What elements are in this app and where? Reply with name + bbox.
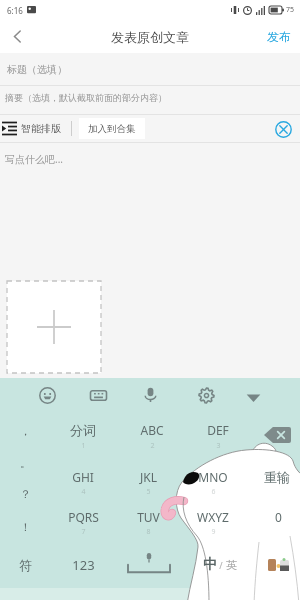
- button[interactable]: WXYZ: [185, 503, 241, 531]
- staticText: ！: [20, 520, 31, 534]
- button[interactable]: 加入到合集: [79, 118, 145, 139]
- staticText: JKL: [140, 469, 157, 485]
- button[interactable]: Space: [126, 552, 172, 574]
- staticText: 6:16: [7, 5, 23, 16]
- button[interactable]: DEF: [190, 416, 246, 444]
- staticText: 123: [72, 556, 95, 574]
- staticText: WXYZ: [197, 509, 229, 525]
- button[interactable]: 智能排版: [2, 115, 61, 142]
- staticText: 4: [81, 487, 86, 497]
- staticText: /: [217, 559, 226, 571]
- button[interactable]: ！: [0, 513, 53, 541]
- button[interactable]: 标题（选填）: [7, 53, 300, 85]
- staticText: 标题（选填）: [7, 63, 67, 76]
- button[interactable]: Stickers: [267, 557, 289, 573]
- button[interactable]: ，: [0, 417, 53, 445]
- staticText: 中: [203, 556, 217, 574]
- button[interactable]: Voice input: [138, 382, 162, 406]
- button[interactable]: 写点什么吧...: [5, 152, 300, 175]
- staticText: TUV: [137, 509, 160, 525]
- staticText: ，: [20, 424, 31, 438]
- staticText: DEF: [207, 422, 229, 438]
- button[interactable]: GHI: [55, 463, 111, 491]
- staticText: 智能排版: [21, 122, 61, 135]
- button[interactable]: 分词: [55, 416, 111, 444]
- staticText: 3: [216, 441, 221, 451]
- staticText: 75: [286, 5, 295, 15]
- button[interactable]: Settings: [194, 383, 218, 407]
- button[interactable]: Add image: [7, 281, 101, 373]
- button[interactable]: Back: [0, 20, 34, 53]
- staticText: 5: [146, 487, 151, 497]
- button[interactable]: 。: [0, 449, 53, 477]
- button[interactable]: Backspace: [264, 427, 291, 443]
- staticText: 英: [226, 558, 237, 572]
- staticText: ？: [20, 487, 31, 501]
- staticText: 8: [146, 527, 151, 537]
- button[interactable]: 重输: [249, 463, 300, 491]
- button[interactable]: Emoji: [35, 383, 59, 407]
- button[interactable]: TUV: [120, 503, 176, 531]
- button[interactable]: JKL: [120, 463, 176, 491]
- staticText: 6: [211, 487, 216, 497]
- button[interactable]: Close: [273, 119, 293, 139]
- button[interactable]: ABC: [124, 416, 180, 444]
- button[interactable]: 0: [250, 503, 300, 531]
- staticText: 发表原创文章: [111, 29, 189, 45]
- staticText: ABC: [140, 422, 164, 438]
- button[interactable]: 发布: [267, 20, 291, 53]
- staticText: 2: [150, 441, 155, 451]
- staticText: 发布: [267, 29, 291, 44]
- staticText: 。: [20, 456, 31, 470]
- button[interactable]: PQRS: [55, 503, 111, 531]
- button[interactable]: Chinese / English: [203, 554, 237, 576]
- staticText: 摘要（选填，默认截取前面的部分内容）: [5, 92, 167, 103]
- staticText: 9: [211, 527, 216, 537]
- staticText: 1: [81, 441, 86, 451]
- staticText: 分词: [70, 422, 96, 438]
- staticText: 重输: [264, 469, 290, 485]
- staticText: 0: [275, 509, 282, 525]
- staticText: 7: [81, 527, 86, 537]
- staticText: 加入到合集: [88, 123, 136, 135]
- button[interactable]: 123: [55, 551, 111, 579]
- button[interactable]: 符: [0, 551, 53, 579]
- staticText: 写点什么吧...: [5, 152, 64, 166]
- button[interactable]: 摘要（选填，默认截取前面的部分内容）: [5, 86, 300, 108]
- staticText: MNO: [198, 469, 228, 485]
- button[interactable]: MNO: [185, 463, 241, 491]
- staticText: GHI: [72, 469, 94, 485]
- staticText: PQRS: [68, 509, 99, 525]
- button[interactable]: Hide keyboard: [241, 385, 265, 409]
- button[interactable]: ？: [0, 480, 53, 508]
- button[interactable]: Keyboard layout: [86, 383, 110, 407]
- staticText: 符: [19, 557, 32, 573]
